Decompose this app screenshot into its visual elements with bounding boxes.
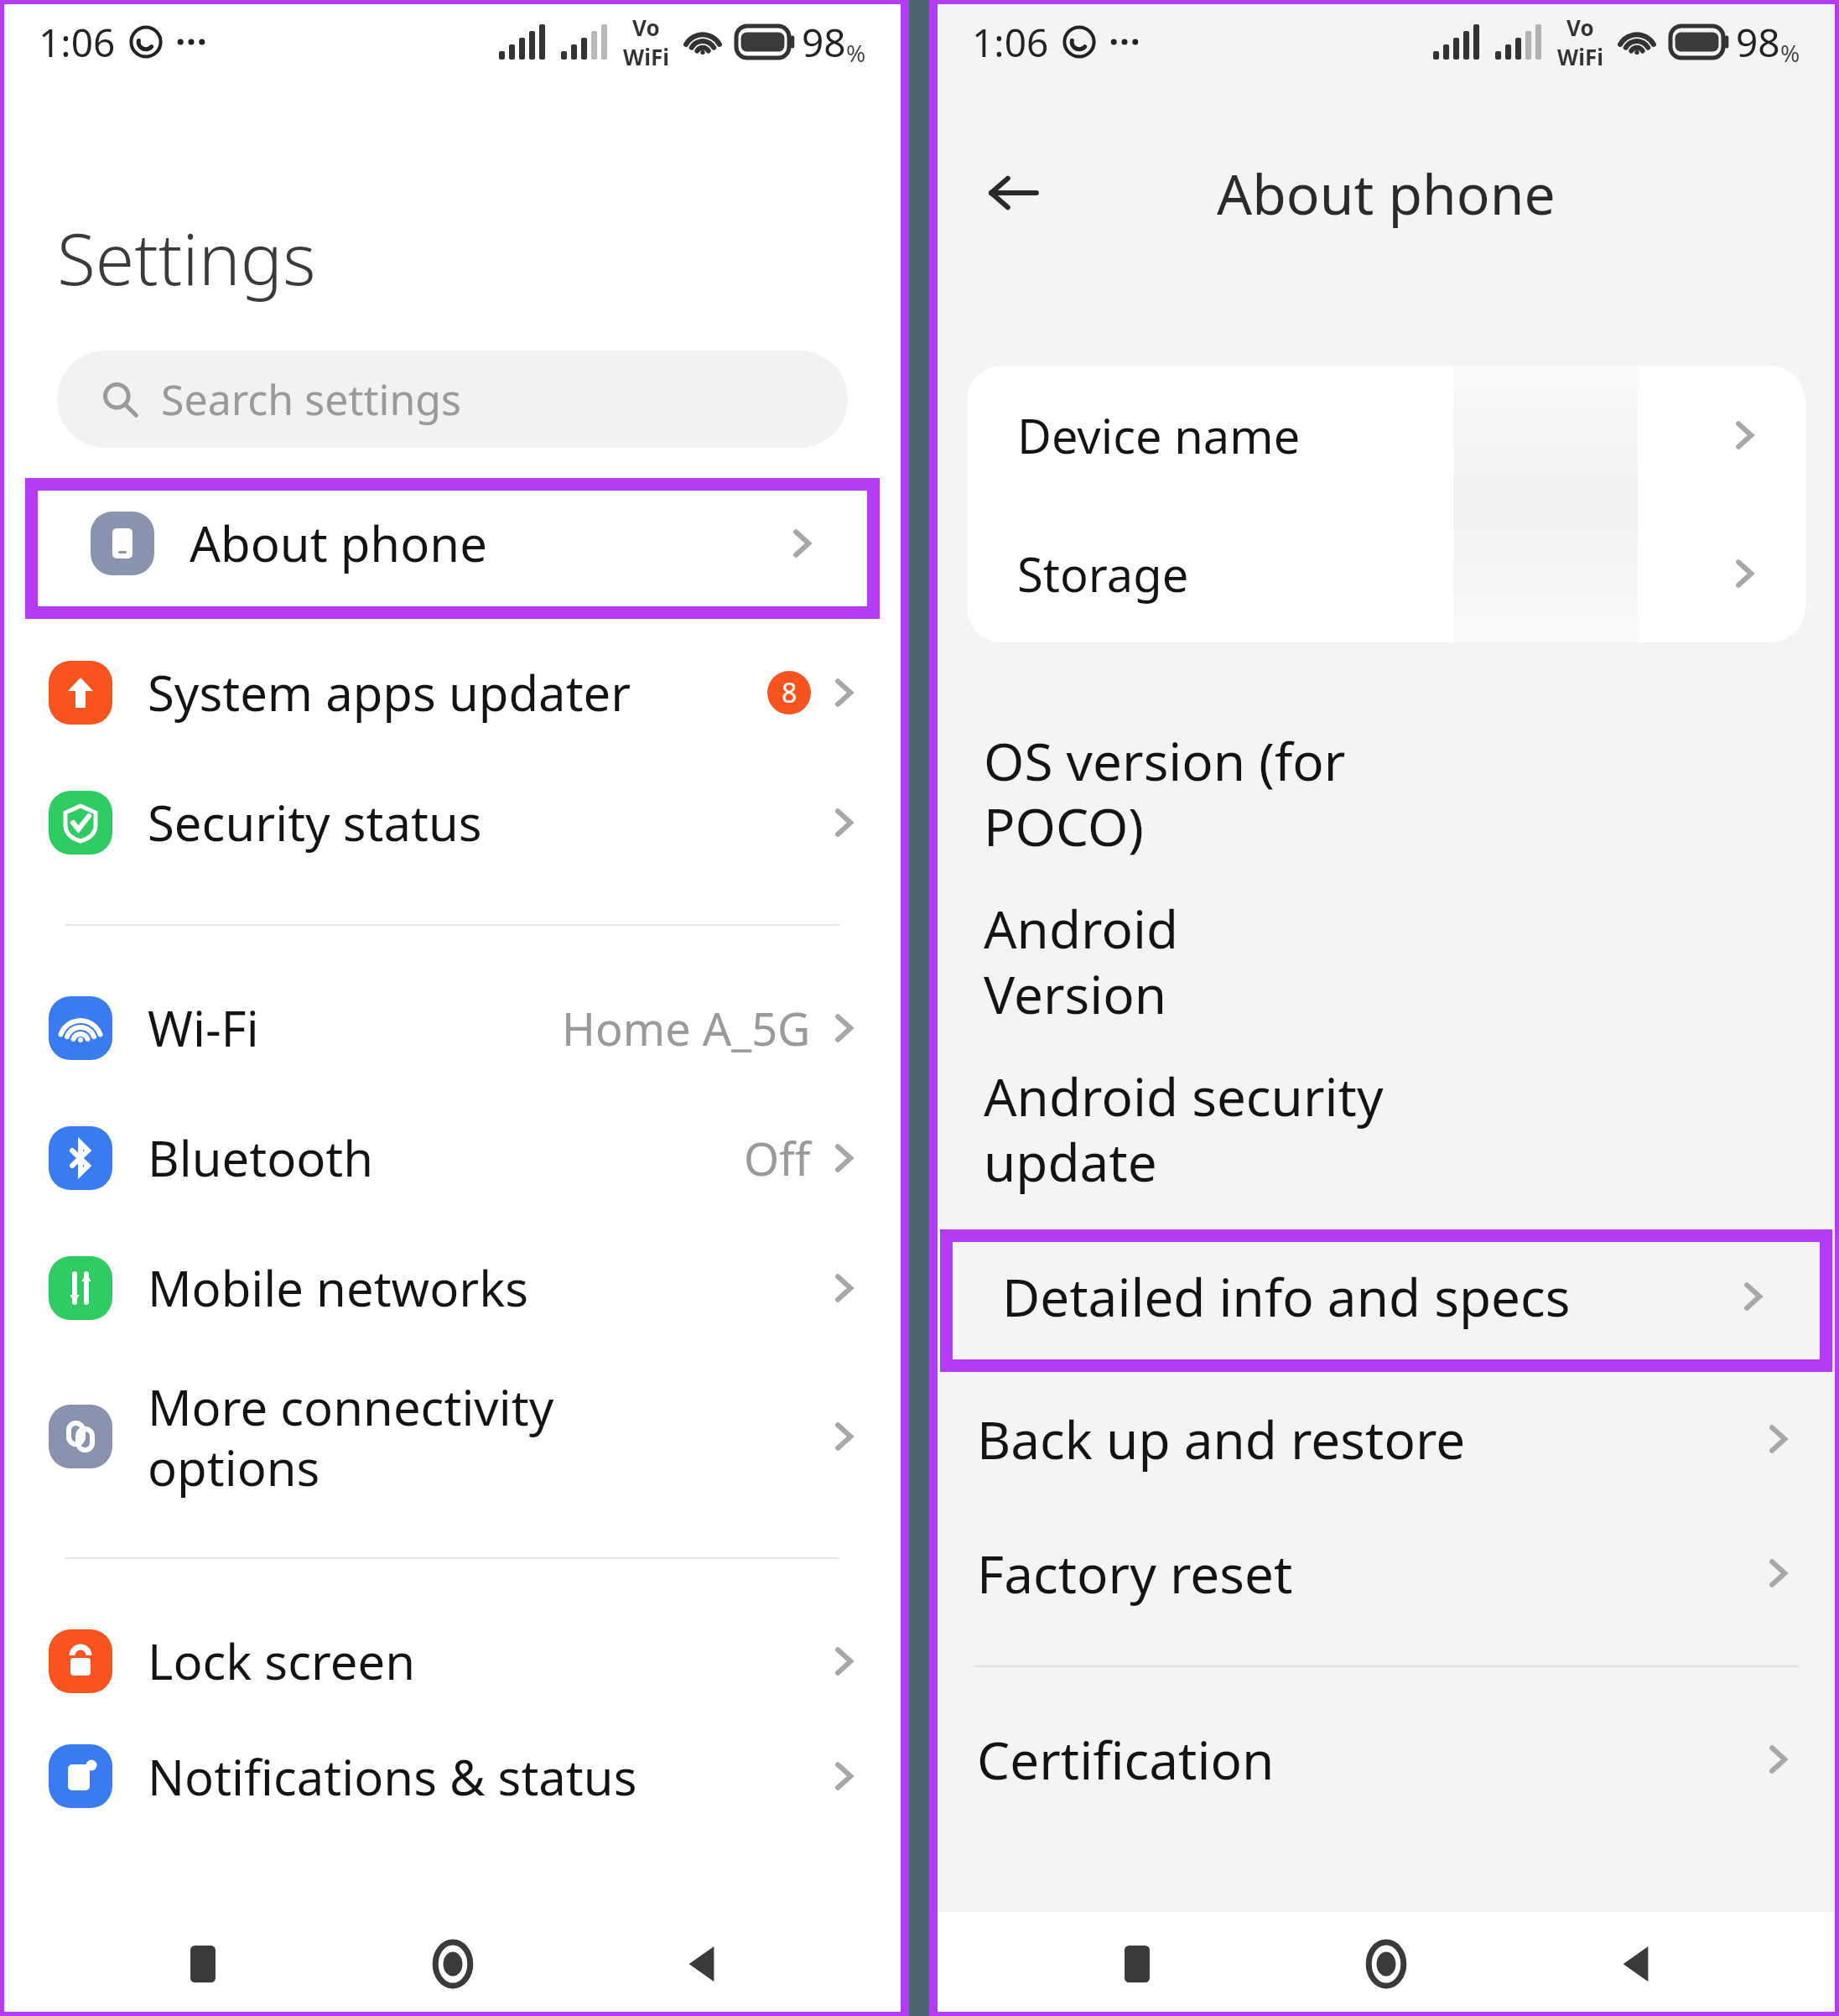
staticText: 1:06 (39, 16, 116, 69)
staticText: Certification (977, 1724, 1758, 1795)
staticText: 8 (782, 674, 797, 711)
button[interactable]: Security status (0, 757, 905, 887)
staticText: Vo (632, 13, 660, 42)
staticText: OS version (for POCO) (984, 725, 1797, 861)
staticText: Factory reset (977, 1538, 1758, 1608)
button[interactable]: Back (656, 1918, 748, 2010)
button[interactable]: OS version (for POCO) (933, 709, 1839, 877)
staticText: Security status (148, 789, 824, 855)
button[interactable]: Certification (933, 1692, 1839, 1826)
staticText: Home A_5G (562, 997, 811, 1059)
staticText: % (846, 37, 866, 69)
button[interactable]: About phone (42, 478, 863, 608)
staticText: More connectivity options (148, 1374, 824, 1500)
button[interactable]: Recents (157, 1918, 249, 2010)
button[interactable]: Home (407, 1918, 499, 2010)
button[interactable]: Home (1340, 1918, 1432, 2010)
staticText: 98 (802, 16, 846, 69)
button[interactable]: Bluetooth (0, 1093, 905, 1223)
button[interactable]: System apps updater (0, 627, 905, 757)
staticText: 1:06 (972, 16, 1049, 69)
button[interactable]: Back up and restore (933, 1372, 1839, 1506)
button[interactable]: Detailed info and specs (958, 1229, 1814, 1364)
button[interactable]: Back (967, 147, 1059, 239)
button[interactable]: Back (1590, 1918, 1682, 2010)
staticText: Storage (1017, 542, 1725, 605)
staticText: 98 (1736, 16, 1780, 69)
button[interactable]: Lock screen (0, 1596, 905, 1726)
staticText: % (1780, 37, 1800, 69)
button[interactable]: More connectivity options (0, 1353, 905, 1520)
button[interactable]: Storage (967, 504, 1805, 642)
button[interactable]: Mobile networks (0, 1223, 905, 1353)
staticText: Notifications & status (148, 1743, 824, 1810)
staticText: Mobile networks (148, 1255, 824, 1321)
staticText: About phone (1217, 155, 1556, 231)
staticText: Android Version (984, 893, 1797, 1029)
staticText: WiFi (623, 42, 669, 71)
staticText: System apps updater (148, 659, 767, 725)
button[interactable]: Factory reset (933, 1506, 1839, 1640)
button[interactable]: Android security update (933, 1045, 1839, 1213)
staticText: Bluetooth (148, 1125, 744, 1191)
button[interactable]: Detailed info and specs (940, 1229, 1832, 1372)
staticText: Android security update (984, 1061, 1797, 1197)
button[interactable]: Android Version (933, 877, 1839, 1045)
button[interactable]: Search settings (57, 351, 848, 448)
button[interactable]: About phone (25, 478, 880, 619)
staticText: Lock screen (148, 1628, 824, 1694)
staticText: Detailed info and specs (1002, 1261, 1733, 1332)
button[interactable]: Device name (967, 366, 1805, 504)
staticText: Off (744, 1127, 811, 1189)
staticText: Search settings (161, 371, 461, 428)
button[interactable]: Recents (1091, 1918, 1183, 2010)
staticText: Vo (1566, 13, 1594, 42)
button[interactable]: Wi-Fi (0, 963, 905, 1093)
staticText: WiFi (1557, 42, 1603, 71)
staticText: Settings (57, 210, 316, 305)
staticText: Back up and restore (977, 1404, 1758, 1474)
staticText: About phone (190, 510, 782, 576)
button[interactable]: Notifications & status (0, 1726, 905, 1826)
staticText: Wi-Fi (148, 995, 562, 1061)
staticText: Device name (1017, 403, 1725, 467)
